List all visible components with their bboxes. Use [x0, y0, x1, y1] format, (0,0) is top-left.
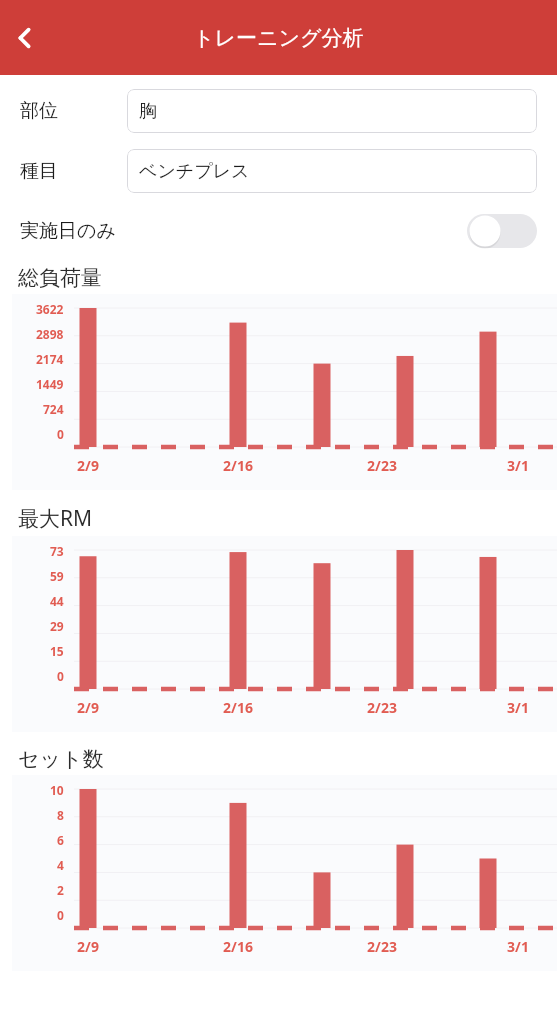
staticText: 2/16	[213, 698, 263, 717]
staticText: 59	[50, 568, 64, 584]
staticText: 44	[50, 593, 64, 609]
staticText: 2/23	[357, 456, 407, 475]
staticText: 実施日のみ	[20, 219, 467, 243]
button[interactable]: 胸	[127, 89, 537, 133]
staticText: 724	[43, 401, 64, 417]
button[interactable]: Back	[2, 15, 48, 61]
staticText: 部位	[20, 99, 127, 123]
staticText: セット数	[18, 746, 104, 772]
staticText: 4	[57, 857, 64, 873]
staticText: トレーニング分析	[193, 25, 364, 51]
staticText: 0	[57, 426, 64, 442]
staticText: 2/9	[63, 937, 113, 956]
staticText: 8	[57, 807, 64, 823]
button[interactable]: ベンチプレス	[127, 149, 537, 193]
staticText: 2	[57, 882, 64, 898]
staticText: ベンチプレス	[139, 160, 250, 183]
staticText: 胸	[139, 100, 157, 123]
staticText: 3/1	[493, 698, 543, 717]
button[interactable]: 実施日のみ	[0, 205, 557, 257]
staticText: 29	[50, 618, 64, 634]
staticText: 2/23	[357, 937, 407, 956]
staticText: 2/23	[357, 698, 407, 717]
staticText: 最大RM	[18, 504, 93, 533]
staticText: 2174	[36, 351, 64, 367]
staticText: 2/9	[63, 698, 113, 717]
staticText: 2898	[36, 326, 64, 342]
staticText: 種目	[20, 159, 127, 183]
staticText: 1449	[36, 376, 64, 392]
staticText: 2/16	[213, 937, 263, 956]
staticText: 3/1	[493, 456, 543, 475]
staticText: 2/16	[213, 456, 263, 475]
staticText: 総負荷量	[18, 265, 102, 291]
staticText: 6	[57, 832, 64, 848]
staticText: 10	[50, 782, 64, 798]
staticText: 3622	[36, 301, 64, 317]
staticText: 0	[57, 668, 64, 684]
staticText: 73	[50, 543, 64, 559]
staticText: 15	[50, 643, 64, 659]
staticText: 0	[57, 907, 64, 923]
staticText: 3/1	[493, 937, 543, 956]
staticText: 2/9	[63, 456, 113, 475]
